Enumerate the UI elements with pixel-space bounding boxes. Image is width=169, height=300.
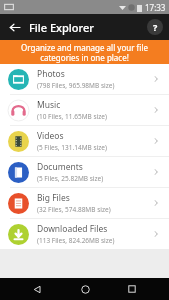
staticText: (32 Files, 574.88MB size) — [37, 205, 111, 214]
staticText: (5 Files, 131.14MB size) — [37, 143, 107, 152]
staticText: Organize and manage all your file catego… — [8, 42, 161, 63]
staticText: (113 Files, 824.26MB size) — [37, 236, 115, 245]
staticText: 17:33 — [145, 2, 166, 13]
button[interactable]: Back — [4, 17, 24, 37]
button[interactable]: Back — [26, 278, 48, 300]
other: Open Photos — [151, 74, 161, 84]
staticText: Downloaded Files — [37, 223, 108, 235]
other: Open Big Files — [151, 198, 161, 208]
staticText: Photos — [37, 68, 65, 80]
button[interactable]: Big Files — [0, 188, 169, 218]
other: Open Documents — [151, 167, 161, 177]
button[interactable]: Videos — [0, 126, 169, 156]
button[interactable]: Help — [147, 19, 163, 35]
staticText: Big Files — [37, 192, 70, 204]
staticText: (798 Files, 965.98MB size) — [37, 81, 115, 90]
staticText: ? — [153, 21, 158, 33]
staticText: Music — [37, 99, 61, 111]
button[interactable]: Recents — [121, 278, 143, 300]
staticText: (5 Files, 25.82MB size) — [37, 174, 104, 183]
button[interactable]: Downloaded Files — [0, 219, 169, 249]
staticText: File Explorer — [29, 20, 94, 35]
staticText: Documents — [37, 161, 83, 173]
other: Open Downloaded Files — [151, 229, 161, 239]
button[interactable]: Documents — [0, 157, 169, 187]
staticText: Videos — [37, 130, 64, 142]
button[interactable]: Music — [0, 95, 169, 125]
button[interactable]: Photos — [0, 64, 169, 94]
other: Open Videos — [151, 136, 161, 146]
staticText: (10 Files, 11.65MB size) — [37, 112, 107, 121]
other: Open Music — [151, 105, 161, 115]
button[interactable]: Home — [74, 278, 96, 300]
